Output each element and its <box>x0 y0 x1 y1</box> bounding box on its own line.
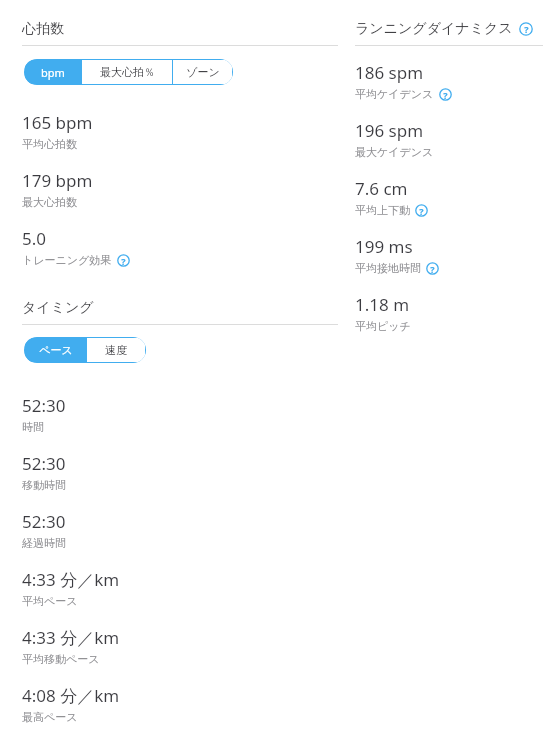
staticText: 心拍数 <box>22 20 64 38</box>
staticText: 移動時間 <box>22 478 66 492</box>
staticText: 平均接地時間 <box>355 261 421 275</box>
staticText: トレーニング効果 <box>22 253 112 267</box>
button[interactable]: Help <box>117 254 130 267</box>
staticText: 5.0 <box>22 227 47 250</box>
staticText: 196 spm <box>355 119 424 142</box>
staticText: 平均ピッチ <box>355 319 411 333</box>
button[interactable]: ペース <box>25 338 86 362</box>
staticText: 平均ケイデンス <box>355 87 434 101</box>
button[interactable]: Help <box>426 262 439 275</box>
staticText: 最高ペース <box>22 710 78 724</box>
staticText: 179 bpm <box>22 169 93 192</box>
button[interactable]: Help <box>519 22 533 36</box>
staticText: 186 spm <box>355 61 424 84</box>
button[interactable]: Help <box>415 204 428 217</box>
staticText: 最大ケイデンス <box>355 145 434 159</box>
staticText: ? <box>419 205 424 217</box>
staticText: 平均上下動 <box>355 203 410 217</box>
staticText: 平均ペース <box>22 594 78 608</box>
staticText: 165 bpm <box>22 111 93 134</box>
staticText: 最大心拍％ <box>100 65 155 79</box>
staticText: 最大心拍数 <box>22 195 77 209</box>
staticText: bpm <box>41 65 65 80</box>
staticText: 4:33 分／km <box>22 626 120 649</box>
staticText: 1.18 m <box>355 293 410 316</box>
button[interactable]: bpm <box>25 60 81 84</box>
staticText: 経過時間 <box>22 536 66 550</box>
staticText: 52:30 <box>22 452 66 475</box>
staticText: 速度 <box>105 343 127 357</box>
staticText: ? <box>524 23 529 35</box>
staticText: 52:30 <box>22 510 66 533</box>
staticText: 平均心拍数 <box>22 137 77 151</box>
staticText: ランニングダイナミクス <box>355 20 513 38</box>
button[interactable]: ゾーン <box>173 60 232 84</box>
staticText: 時間 <box>22 420 44 434</box>
button[interactable]: Help <box>439 88 452 101</box>
staticText: 199 ms <box>355 235 413 258</box>
staticText: ? <box>430 263 435 275</box>
staticText: ? <box>121 255 126 267</box>
staticText: 4:33 分／km <box>22 568 120 591</box>
staticText: タイミング <box>22 299 94 317</box>
staticText: ゾーン <box>186 65 220 79</box>
button[interactable]: 最大心拍％ <box>82 60 172 84</box>
staticText: 7.6 cm <box>355 177 408 200</box>
button[interactable]: 速度 <box>87 338 145 362</box>
staticText: ペース <box>39 343 73 357</box>
staticText: 52:30 <box>22 394 66 417</box>
staticText: 平均移動ペース <box>22 652 100 666</box>
staticText: ? <box>443 89 448 101</box>
staticText: 4:08 分／km <box>22 684 120 707</box>
